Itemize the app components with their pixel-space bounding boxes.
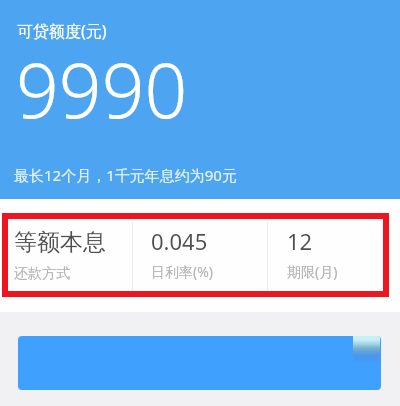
button[interactable]: 0.045 <box>133 199 267 312</box>
staticText: 日利率(%) <box>151 262 214 281</box>
button[interactable]: 12 <box>268 199 400 312</box>
staticText: 等额本息 <box>14 228 106 257</box>
staticText: 9990 <box>16 38 188 140</box>
button[interactable]: 等额本息 <box>0 199 132 312</box>
staticText: 12 <box>287 226 313 256</box>
button[interactable]: 立即申请 <box>18 336 381 390</box>
staticText: 最长12个月，1千元年息约为90元 <box>14 165 237 185</box>
staticText: 可贷额度(元) <box>17 20 107 42</box>
staticText: 期限(月) <box>287 262 338 281</box>
staticText: 0.045 <box>151 226 208 256</box>
staticText: 还款方式 <box>14 265 70 283</box>
